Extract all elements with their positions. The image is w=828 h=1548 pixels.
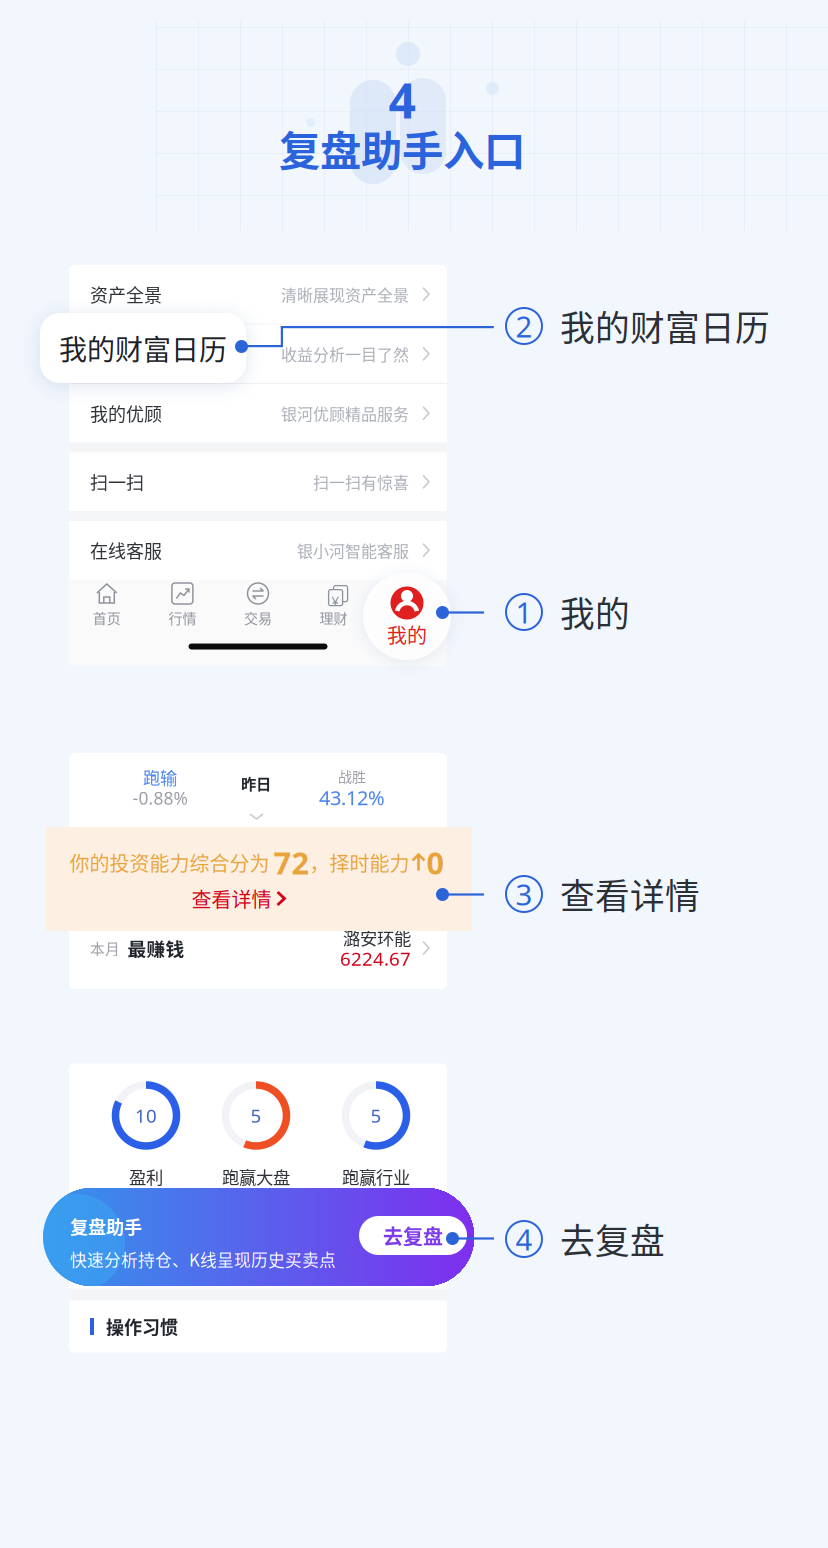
staticText: 操作习惯 xyxy=(106,1313,178,1340)
staticText: 3 xyxy=(515,874,532,913)
button[interactable]: 我的财富日历 xyxy=(69,324,447,383)
staticText: 去复盘 xyxy=(560,1214,665,1264)
staticText: 首页 xyxy=(93,607,121,628)
staticText: 43.12% xyxy=(319,784,385,811)
staticText: 我的 xyxy=(395,607,423,628)
staticText: 跑赢行业 xyxy=(342,1164,410,1189)
staticText: ，择时能力 xyxy=(309,848,409,877)
staticText: 昨日 xyxy=(241,772,271,794)
staticText: 我的财富日历 xyxy=(560,301,770,351)
staticText: 复盘助手入口 xyxy=(279,118,525,178)
button[interactable]: 首页 xyxy=(69,579,145,627)
staticText: 交易 xyxy=(244,607,272,628)
staticText: 行情 xyxy=(168,607,196,628)
staticText: 跑赢大盘 xyxy=(222,1164,290,1189)
button[interactable]: 去复盘 xyxy=(359,1216,467,1255)
staticText: 我的优顾 xyxy=(90,400,162,426)
staticText: 我的 xyxy=(560,587,630,637)
staticText: 6224.67 xyxy=(340,946,411,971)
staticText: 72 xyxy=(273,842,309,883)
staticText: 查看详情 xyxy=(191,884,271,913)
staticText: 银小河智能客服 xyxy=(297,539,409,562)
button[interactable]: 我的 xyxy=(371,579,447,627)
staticText: 清晰展现资产全景 xyxy=(281,283,409,306)
staticText: ¥ xyxy=(332,592,340,609)
staticText: 查看详情 xyxy=(560,869,700,919)
staticText: 最赚钱 xyxy=(127,934,184,961)
staticText: 扫一扫 xyxy=(90,469,144,495)
staticText: 4 xyxy=(388,68,415,132)
staticText: 我的财富日历 xyxy=(59,328,227,368)
staticText: 收益分析一目了然 xyxy=(281,342,409,365)
button[interactable]: 2 xyxy=(506,306,773,346)
button[interactable]: 3 xyxy=(506,874,703,914)
staticText: 在线客服 xyxy=(90,537,162,563)
button[interactable]: 我的优顾 xyxy=(69,384,447,442)
staticText: 5 xyxy=(370,1103,381,1128)
staticText: 本月 xyxy=(90,937,120,959)
staticText: 4 xyxy=(515,1219,532,1258)
button[interactable]: 4 xyxy=(506,1219,670,1259)
staticText: 跑输 xyxy=(143,764,177,790)
staticText: 2 xyxy=(515,306,532,345)
staticText: 盈利 xyxy=(129,1164,163,1189)
staticText: 银河优顾精品服务 xyxy=(281,402,409,425)
staticText: 复盘助手 xyxy=(70,1213,142,1239)
button[interactable]: 资产全景 xyxy=(69,265,447,323)
staticText: 战胜 xyxy=(338,766,366,786)
staticText: 1 xyxy=(515,592,532,631)
staticText: -0.88% xyxy=(132,786,187,809)
button[interactable]: 行情 xyxy=(145,579,220,627)
staticText: 5 xyxy=(250,1103,261,1128)
button[interactable]: 在线客服 xyxy=(69,521,447,579)
button[interactable]: 理财 xyxy=(296,579,371,627)
staticText: 资产全景 xyxy=(90,281,162,307)
staticText: 我的财富日历 xyxy=(90,341,198,367)
staticText: 去复盘 xyxy=(383,1221,443,1250)
button[interactable]: 扫一扫 xyxy=(69,452,447,511)
staticText: 快速分析持仓、K线呈现历史买卖点 xyxy=(70,1247,336,1271)
staticText: 你的投资能力综合分为 xyxy=(69,848,269,877)
staticText: 扫一扫有惊喜 xyxy=(313,470,409,493)
button[interactable]: 1 xyxy=(506,592,636,632)
staticText: 0 xyxy=(426,842,444,883)
staticText: 理财 xyxy=(320,607,348,628)
staticText: 我的 xyxy=(387,620,427,649)
staticText: 10 xyxy=(135,1103,157,1128)
staticText: 潞安环能 xyxy=(343,925,411,950)
button[interactable]: 交易 xyxy=(220,579,296,627)
